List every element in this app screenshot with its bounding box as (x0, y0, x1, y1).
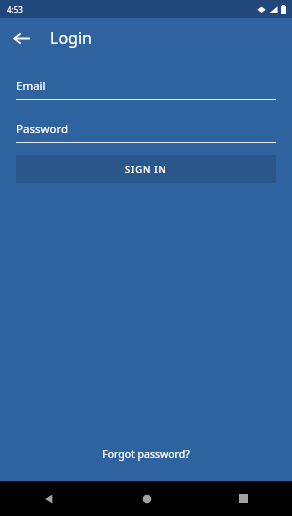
button[interactable]: Forgot password? (0, 443, 292, 465)
button[interactable]: SIGN IN (16, 155, 276, 183)
staticText: Login (50, 27, 92, 49)
button[interactable]: Password (16, 121, 276, 143)
staticText: SIGN IN (125, 163, 167, 176)
staticText: 4:53 (7, 4, 23, 15)
staticText: Forgot password? (102, 447, 190, 461)
staticText: Email (16, 78, 46, 94)
button[interactable]: Email (16, 78, 276, 100)
button[interactable]: Home (98, 481, 195, 516)
button[interactable]: Back (6, 23, 36, 53)
staticText: Password (16, 121, 69, 137)
button[interactable]: Back (0, 481, 98, 516)
button[interactable]: Recent apps (195, 481, 292, 516)
